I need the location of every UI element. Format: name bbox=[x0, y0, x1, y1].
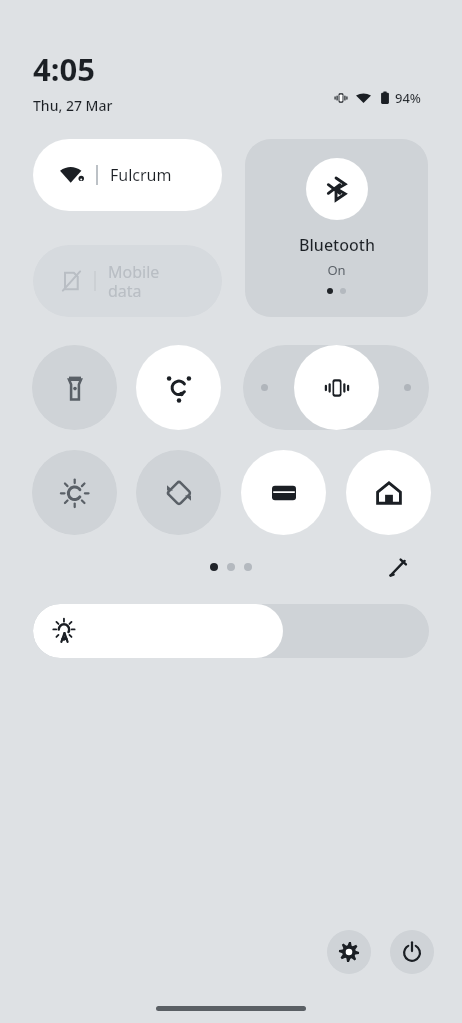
button[interactable]: Brightness bbox=[33, 604, 429, 658]
button[interactable]: Night light bbox=[32, 450, 117, 535]
button[interactable]: Flashlight bbox=[32, 345, 117, 430]
staticText: Mobile data bbox=[108, 261, 160, 302]
button[interactable]: Ringer mode: vibrate bbox=[243, 345, 429, 430]
button[interactable]: Mobile data bbox=[33, 245, 222, 317]
staticText: On bbox=[327, 261, 346, 279]
button[interactable]: Wallet bbox=[241, 450, 326, 535]
staticText: Bluetooth bbox=[299, 234, 375, 256]
button[interactable]: Home bbox=[346, 450, 431, 535]
button[interactable]: Bluetooth bbox=[245, 139, 428, 317]
button[interactable]: Fulcrum bbox=[33, 139, 222, 211]
button[interactable]: Auto rotate bbox=[136, 450, 221, 535]
staticText: Thu, 27 Mar bbox=[33, 96, 113, 115]
button[interactable]: Color mode bbox=[136, 345, 221, 430]
button[interactable]: Edit tiles bbox=[378, 548, 418, 588]
staticText: Fulcrum bbox=[110, 164, 172, 186]
staticText: 94% bbox=[395, 89, 421, 107]
button[interactable]: Settings bbox=[327, 930, 371, 974]
staticText: 4:05 bbox=[33, 48, 95, 90]
button[interactable]: Power bbox=[390, 930, 434, 974]
